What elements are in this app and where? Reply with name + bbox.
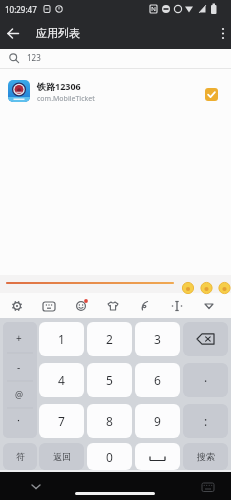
- button[interactable]: 4: [39, 363, 84, 397]
- button[interactable]: +: [3, 322, 37, 438]
- staticText: com.MobileTicket: [37, 94, 95, 104]
- staticText: 5: [106, 372, 113, 388]
- button[interactable]: [198, 295, 220, 317]
- staticText: 7: [58, 413, 65, 429]
- staticText: 返回: [53, 451, 71, 462]
- staticText: .: [204, 369, 208, 385]
- button[interactable]: 123: [0, 49, 231, 68]
- button[interactable]: [134, 295, 156, 317]
- button[interactable]: 返回: [39, 443, 84, 470]
- button[interactable]: [102, 295, 124, 317]
- button[interactable]: 6: [135, 363, 180, 397]
- staticText: -: [17, 360, 21, 374]
- staticText: ·: [17, 412, 20, 427]
- button[interactable]: 9: [135, 404, 180, 438]
- staticText: 0: [106, 449, 113, 465]
- button[interactable]: 5: [87, 363, 132, 397]
- button[interactable]: [183, 322, 228, 356]
- staticText: 10:29:47: [5, 4, 37, 15]
- staticText: 应用列表: [36, 26, 80, 40]
- staticText: 9: [154, 413, 161, 429]
- button[interactable]: [75, 492, 155, 495]
- button[interactable]: 3: [135, 322, 180, 356]
- button[interactable]: [205, 88, 218, 101]
- button[interactable]: 1: [39, 322, 84, 356]
- button[interactable]: [198, 478, 218, 494]
- button[interactable]: 2: [87, 322, 132, 356]
- staticText: 符: [16, 451, 25, 462]
- button[interactable]: 符: [3, 443, 37, 470]
- button[interactable]: 7: [39, 404, 84, 438]
- button[interactable]: [6, 26, 22, 42]
- staticText: @: [15, 388, 24, 400]
- button[interactable]: [6, 295, 28, 317]
- staticText: 8: [106, 413, 113, 429]
- staticText: 2: [106, 331, 113, 347]
- staticText: 4: [58, 372, 65, 388]
- button[interactable]: 铁路12306: [0, 69, 231, 115]
- button[interactable]: [135, 443, 180, 470]
- button[interactable]: 0: [87, 443, 132, 470]
- button[interactable]: [38, 295, 60, 317]
- button[interactable]: [216, 25, 230, 43]
- staticText: 3: [154, 331, 161, 347]
- staticText: +: [16, 331, 22, 345]
- staticText: 铁路12306: [37, 80, 81, 92]
- staticText: 1: [58, 331, 65, 347]
- button[interactable]: 8: [87, 404, 132, 438]
- button[interactable]: 搜索: [183, 443, 228, 470]
- button[interactable]: :: [183, 404, 228, 438]
- button[interactable]: [166, 295, 188, 317]
- button[interactable]: [70, 295, 92, 317]
- staticText: :: [204, 413, 208, 429]
- button[interactable]: [26, 478, 46, 494]
- staticText: 搜索: [197, 451, 215, 462]
- button[interactable]: .: [183, 363, 228, 397]
- staticText: 6: [154, 372, 161, 388]
- staticText: 123: [27, 52, 41, 63]
